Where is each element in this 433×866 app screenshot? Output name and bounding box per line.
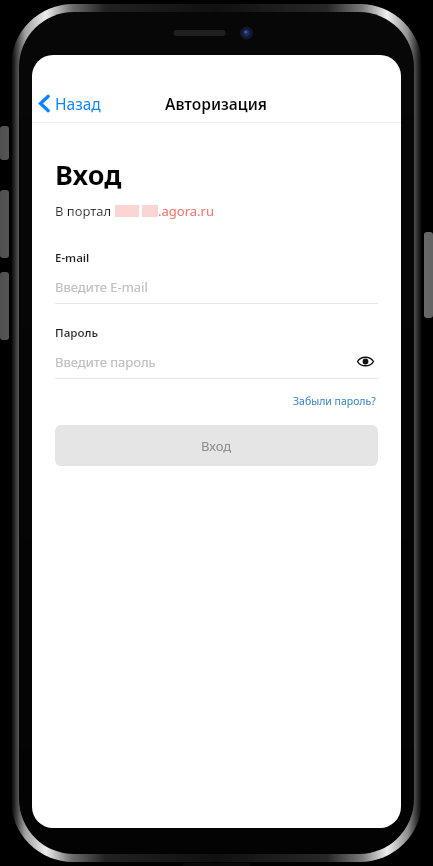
button[interactable]: Введите пароль: [55, 353, 378, 379]
staticText: E-mail: [55, 250, 90, 266]
button[interactable]: Введите E-mail: [55, 278, 378, 304]
staticText: Введите E-mail: [55, 278, 148, 296]
staticText: Вход: [201, 437, 232, 455]
staticText: Забыли пароль?: [293, 394, 376, 408]
button[interactable]: Забыли пароль?: [291, 392, 378, 410]
staticText: Пароль: [55, 325, 99, 341]
staticText: Введите пароль: [55, 353, 156, 371]
staticText: Авторизация: [165, 93, 268, 114]
staticText: Назад: [55, 93, 101, 114]
button[interactable]: Назад: [32, 87, 111, 120]
staticText: В портал: [55, 202, 115, 220]
button[interactable]: Показать пароль: [353, 349, 378, 374]
staticText: .agora.ru: [158, 202, 214, 220]
staticText: Вход: [55, 156, 122, 193]
button[interactable]: Вход: [55, 425, 378, 466]
